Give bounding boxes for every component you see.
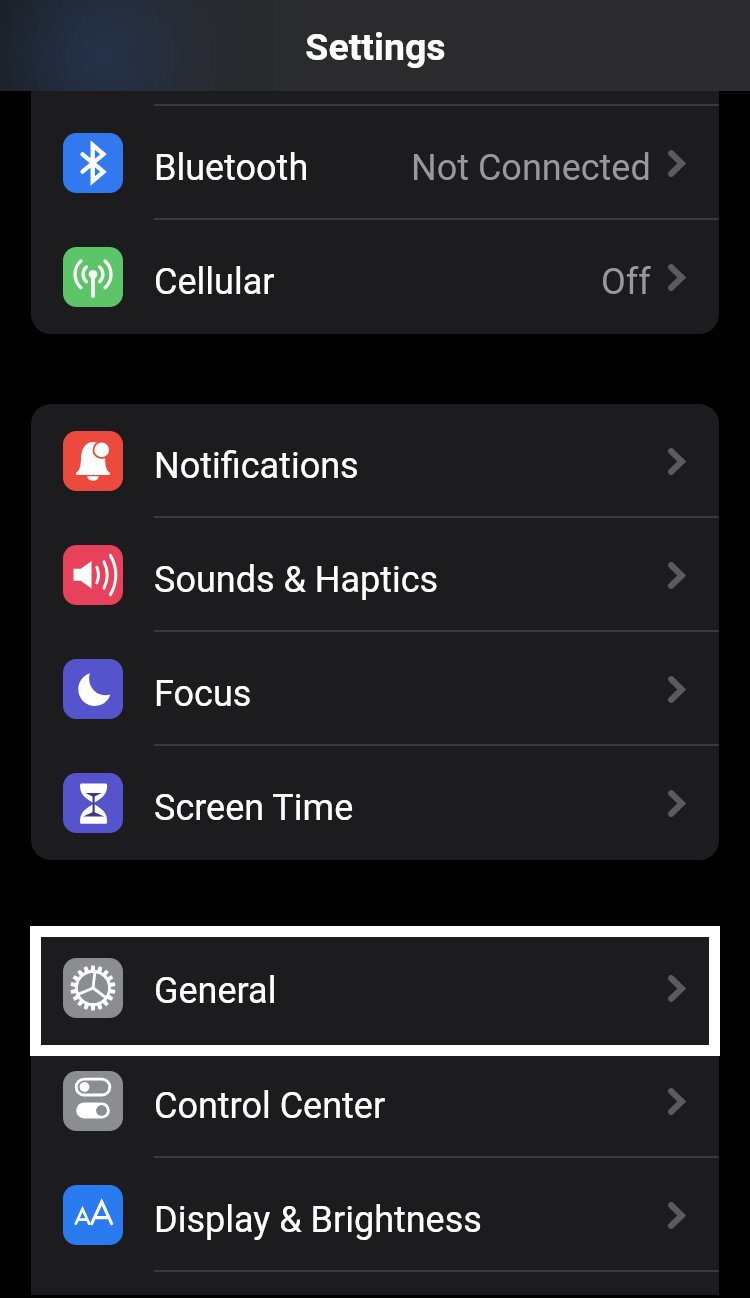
button[interactable]: Wi-Fi	[31, 0, 719, 106]
button[interactable]: Sounds & Haptics	[31, 518, 719, 632]
button[interactable]: Focus	[31, 632, 719, 746]
staticText: Control Center	[154, 1085, 386, 1127]
button[interactable]: Bluetooth	[31, 106, 719, 220]
staticText: Settings	[305, 25, 446, 69]
staticText: Focus	[154, 673, 252, 715]
staticText: Cellular	[154, 261, 275, 303]
staticText: Sounds & Haptics	[154, 559, 439, 601]
button[interactable]: Cellular	[31, 220, 719, 334]
staticText: Screen Time	[154, 787, 354, 829]
staticText: Wi-Fi	[154, 33, 234, 75]
staticText: Off	[601, 261, 651, 303]
staticText: General	[154, 970, 277, 1012]
staticText: Not Connected	[411, 147, 651, 189]
button[interactable]: Notifications	[31, 404, 719, 518]
staticText: Bluetooth	[154, 147, 309, 189]
button[interactable]: Control Center	[31, 1044, 719, 1158]
staticText: Display & Brightness	[154, 1199, 482, 1241]
button[interactable]: Display & Brightness	[31, 1158, 719, 1272]
button[interactable]: Screen Time	[31, 746, 719, 860]
button[interactable]: General	[41, 937, 709, 1045]
staticText: Notifications	[154, 445, 359, 487]
